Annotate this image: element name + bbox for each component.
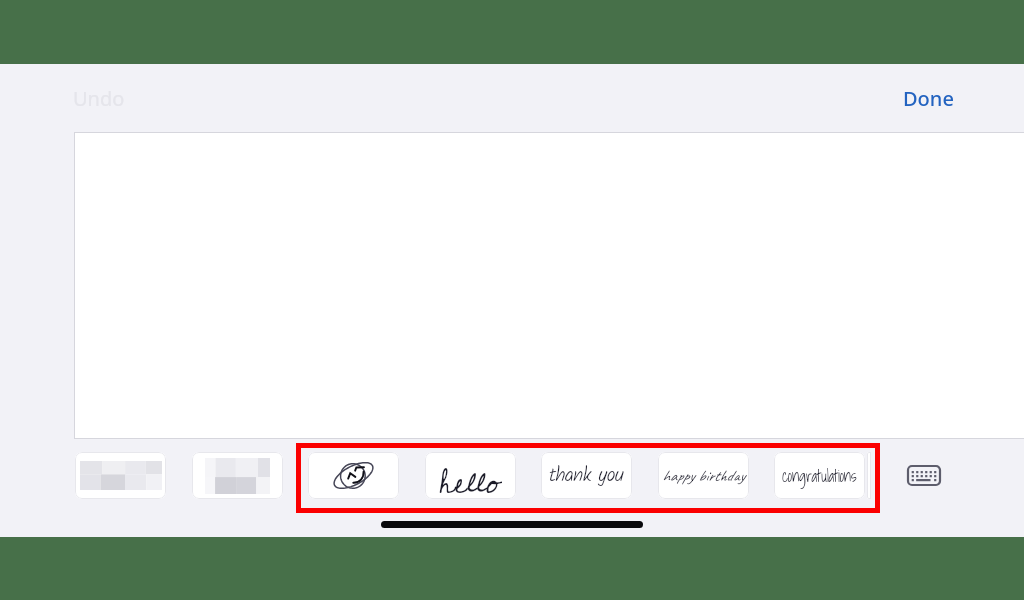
staticText: thank you bbox=[549, 460, 624, 492]
button[interactable]: thank you bbox=[541, 452, 632, 499]
button[interactable]: Recent handwriting 1 bbox=[75, 452, 166, 499]
button[interactable]: congratulations bbox=[774, 452, 865, 499]
button[interactable]: Recent handwriting 2 bbox=[192, 452, 283, 499]
button[interactable]: Keyboard bbox=[900, 451, 948, 499]
button[interactable]: happy birthday bbox=[658, 452, 749, 499]
staticText: Done bbox=[903, 85, 954, 112]
button[interactable]: More suggestions bbox=[867, 452, 871, 499]
button[interactable]: Done bbox=[887, 75, 970, 122]
staticText: Undo bbox=[73, 85, 125, 112]
button[interactable]: hello bbox=[425, 452, 516, 499]
staticText: congratulations bbox=[782, 463, 857, 489]
staticText: happy birthday bbox=[662, 466, 745, 486]
staticText: hello bbox=[439, 452, 502, 499]
button[interactable]: Smiley face bbox=[308, 452, 399, 499]
